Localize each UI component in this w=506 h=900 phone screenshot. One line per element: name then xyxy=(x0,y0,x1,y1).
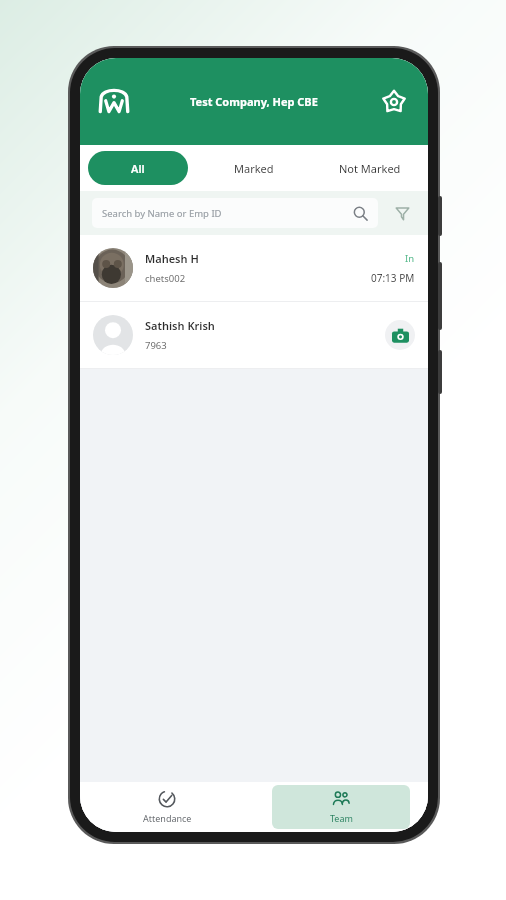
button[interactable]: All xyxy=(88,151,188,185)
staticText: Marked xyxy=(234,161,274,176)
staticText: Mahesh H xyxy=(145,251,199,266)
button[interactable]: App logo xyxy=(94,82,134,122)
button[interactable]: Mahesh H xyxy=(80,235,428,302)
button[interactable]: Attendance xyxy=(98,785,236,829)
staticText: All xyxy=(131,161,145,176)
button[interactable]: Marked xyxy=(204,151,304,185)
button[interactable]: Mark attendance with camera xyxy=(385,320,415,350)
staticText: Sathish Krish xyxy=(145,318,215,333)
button[interactable]: Search by Name or Emp ID xyxy=(92,198,378,228)
button[interactable]: Team xyxy=(272,785,410,829)
button[interactable]: Sathish Krish xyxy=(80,302,428,369)
button[interactable]: Not Marked xyxy=(320,151,420,185)
staticText: 7963 xyxy=(145,339,167,352)
staticText: Test Company, Hep CBE xyxy=(190,94,318,109)
staticText: Attendance xyxy=(143,812,192,824)
button[interactable]: Filter xyxy=(388,199,416,227)
staticText: Team xyxy=(330,812,353,824)
button[interactable]: Settings xyxy=(374,82,414,122)
staticText: chets002 xyxy=(145,272,186,285)
staticText: Not Marked xyxy=(339,161,401,176)
staticText: 07:13 PM xyxy=(371,271,415,285)
staticText: Search by Name or Emp ID xyxy=(102,207,353,220)
staticText: In xyxy=(405,252,415,265)
